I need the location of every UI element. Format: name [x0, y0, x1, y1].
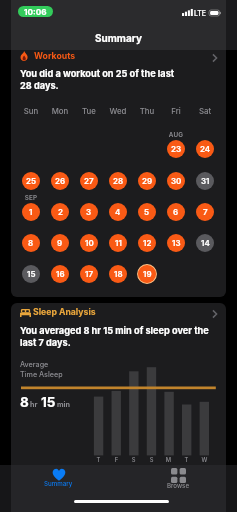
staticText: 14	[201, 238, 210, 248]
staticText: 15	[41, 394, 56, 410]
staticText: You averaged 8 hr 15 min of sleep over t…	[20, 325, 209, 348]
staticText: 15	[27, 269, 36, 279]
staticText: 13	[172, 238, 181, 248]
staticText: S	[147, 456, 156, 463]
staticText: Workouts	[34, 51, 76, 62]
staticText: 10	[85, 238, 94, 248]
staticText: Sat	[191, 106, 219, 115]
staticText: hr	[30, 400, 38, 409]
staticText: 1	[29, 207, 33, 217]
staticText: 8	[28, 238, 34, 248]
staticText: 10:06	[24, 7, 47, 17]
staticText: 9	[57, 238, 63, 248]
staticText: T	[94, 456, 103, 463]
other: Battery	[209, 10, 221, 16]
staticText: Wed	[104, 106, 132, 115]
staticText: F	[112, 456, 121, 463]
staticText: AUG	[162, 131, 190, 139]
staticText: Sleep Analysis	[33, 307, 96, 318]
staticText: S	[129, 456, 138, 463]
staticText: Browse	[167, 482, 190, 490]
staticText: W	[200, 456, 209, 463]
staticText: 12	[143, 238, 152, 248]
staticText: 28	[113, 176, 124, 186]
staticText: 24	[200, 144, 211, 154]
staticText: 3	[86, 207, 92, 217]
staticText: M	[164, 456, 173, 463]
staticText: 6	[173, 207, 179, 217]
staticText: 11	[115, 238, 122, 248]
staticText: You did a workout on 25 of the last 28 d…	[20, 68, 175, 91]
other: Cellular signal	[182, 9, 193, 16]
staticText: 16	[56, 269, 65, 279]
staticText: Tue	[75, 106, 103, 115]
button[interactable]: Sleep Analysis	[11, 303, 226, 512]
staticText: Summary	[0, 32, 237, 44]
staticText: 27	[84, 176, 94, 186]
button[interactable]: Workouts	[11, 44, 226, 297]
staticText: 4	[115, 207, 121, 217]
staticText: T	[182, 456, 191, 463]
staticText: Average Time Asleep	[20, 360, 63, 379]
staticText: Thu	[133, 106, 161, 115]
staticText: 29	[142, 176, 153, 186]
staticText: 8	[20, 394, 29, 410]
staticText: 17	[85, 269, 93, 279]
staticText: 30	[171, 176, 182, 186]
staticText: min	[57, 400, 70, 409]
staticText: 5	[144, 207, 150, 217]
button[interactable]: Summary	[29, 465, 87, 495]
staticText: 31	[201, 176, 210, 186]
staticText: SEP	[17, 194, 45, 202]
staticText: 25	[26, 176, 37, 186]
staticText: 26	[55, 176, 66, 186]
staticText: Fri	[162, 106, 190, 115]
staticText: 7	[203, 207, 208, 217]
staticText: 2	[58, 207, 63, 217]
staticText: 18	[114, 269, 123, 279]
staticText: Summary	[44, 480, 73, 488]
staticText: 23	[171, 144, 182, 154]
button[interactable]: Browse	[149, 465, 207, 495]
staticText: Sun	[17, 106, 45, 115]
staticText: 19	[143, 269, 152, 279]
staticText: LTE	[194, 9, 207, 17]
staticText: Mon	[46, 106, 74, 115]
